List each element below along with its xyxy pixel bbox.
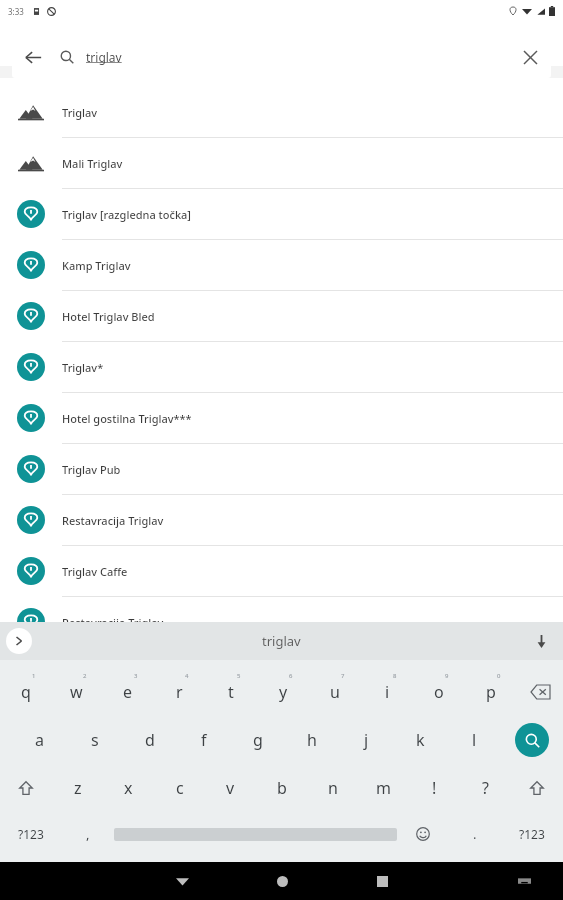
staticText: v — [226, 777, 235, 799]
staticText: x — [124, 777, 133, 799]
button[interactable]: Voice input — [529, 629, 553, 653]
button[interactable]: Triglav Caffe — [0, 546, 563, 596]
button[interactable]: 6 — [257, 668, 309, 716]
staticText: g — [253, 729, 263, 751]
staticText: i — [385, 681, 390, 703]
staticText: u — [330, 681, 340, 703]
staticText: l — [472, 729, 477, 751]
button[interactable]: n — [307, 764, 358, 812]
button[interactable]: 1 — [0, 668, 51, 716]
button[interactable]: More suggestions — [6, 628, 32, 654]
button[interactable]: h — [285, 716, 339, 764]
staticText: 5 — [237, 672, 241, 680]
button[interactable]: Hotel gostilna Triglav*** — [0, 393, 563, 443]
staticText: Restavracija Triglav — [62, 513, 164, 528]
staticText: k — [416, 729, 425, 751]
button[interactable]: Search — [515, 723, 549, 757]
staticText: h — [307, 729, 317, 751]
staticText: 6 — [289, 672, 293, 680]
button[interactable]: Space — [114, 812, 397, 856]
staticText: t — [228, 681, 234, 703]
staticText: Hotel Triglav Bled — [62, 309, 155, 324]
button[interactable]: Kamp Triglav — [0, 240, 563, 290]
button[interactable]: x — [103, 764, 154, 812]
button[interactable]: c — [154, 764, 205, 812]
button[interactable]: Triglav [razgledna točka] — [0, 189, 563, 239]
staticText: q — [21, 681, 31, 703]
staticText: o — [434, 681, 444, 703]
button[interactable]: 2 — [51, 668, 102, 716]
staticText: Triglav — [62, 105, 98, 120]
button[interactable]: v — [205, 764, 256, 812]
button[interactable]: m — [358, 764, 409, 812]
button[interactable]: Shift — [0, 764, 52, 812]
button[interactable]: ! — [409, 764, 460, 812]
staticText: n — [328, 777, 338, 799]
button[interactable]: Restavracija Triglav — [0, 597, 563, 647]
staticText: ?123 — [18, 826, 44, 842]
button[interactable]: j — [339, 716, 393, 764]
button[interactable]: 5 — [205, 668, 257, 716]
staticText: ?123 — [519, 826, 545, 842]
staticText: Triglav Pub — [62, 462, 121, 477]
staticText: w — [70, 681, 83, 703]
button[interactable]: ? — [460, 764, 511, 812]
button[interactable]: 7 — [309, 668, 361, 716]
button[interactable]: 8 — [361, 668, 413, 716]
staticText: m — [376, 777, 391, 799]
button[interactable]: Restavracija Triglav — [0, 495, 563, 545]
staticText: ? — [482, 777, 489, 799]
button[interactable]: Mali Triglav — [0, 138, 563, 188]
button[interactable]: s — [67, 716, 122, 764]
staticText: Triglav* — [62, 360, 104, 375]
staticText: Restavracija Triglav — [62, 615, 164, 630]
button[interactable]: . — [449, 812, 501, 856]
staticText: z — [74, 777, 82, 799]
staticText: , — [86, 825, 90, 843]
button[interactable]: k — [393, 716, 447, 764]
button[interactable]: Switch keyboard — [511, 868, 537, 894]
staticText: e — [123, 681, 133, 703]
button[interactable]: l — [447, 716, 501, 764]
button[interactable]: , — [62, 812, 114, 856]
staticText: Mali Triglav — [62, 156, 123, 171]
button[interactable]: Clear search — [509, 36, 551, 78]
button[interactable]: b — [256, 764, 307, 812]
button[interactable]: 9 — [413, 668, 465, 716]
staticText: Hotel gostilna Triglav*** — [62, 411, 192, 426]
button[interactable]: d — [122, 716, 177, 764]
staticText: 1 — [32, 672, 36, 680]
button[interactable]: Triglav — [0, 87, 563, 137]
button[interactable]: z — [52, 764, 103, 812]
button[interactable]: ?123 — [501, 812, 563, 856]
staticText: p — [486, 681, 496, 703]
button[interactable]: g — [231, 716, 285, 764]
staticText: 7 — [341, 672, 345, 680]
button[interactable]: 3 — [102, 668, 153, 716]
button[interactable]: Home — [232, 862, 332, 900]
staticText: b — [277, 777, 287, 799]
button[interactable]: Back — [132, 862, 232, 900]
staticText: s — [91, 729, 99, 751]
button[interactable]: Shift — [511, 764, 563, 812]
button[interactable]: f — [177, 716, 231, 764]
staticText: Kamp Triglav — [62, 258, 131, 273]
staticText: . — [473, 825, 477, 843]
button[interactable]: triglav — [262, 632, 301, 650]
staticText: 9 — [445, 672, 449, 680]
button[interactable]: Recent apps — [332, 862, 432, 900]
staticText: 3:33 — [8, 6, 24, 17]
button[interactable]: ?123 — [0, 812, 62, 856]
staticText: triglav — [86, 49, 122, 65]
button[interactable]: Back — [12, 36, 54, 78]
button[interactable]: Triglav* — [0, 342, 563, 392]
staticText: f — [201, 729, 207, 751]
button[interactable]: a — [12, 716, 67, 764]
button[interactable]: Backspace — [517, 668, 563, 716]
button[interactable]: 0 — [465, 668, 517, 716]
button[interactable]: Emoji — [397, 812, 449, 856]
button[interactable]: Hotel Triglav Bled — [0, 291, 563, 341]
button[interactable]: Triglav Pub — [0, 444, 563, 494]
staticText: Triglav Caffe — [62, 564, 128, 579]
button[interactable]: 4 — [153, 668, 205, 716]
